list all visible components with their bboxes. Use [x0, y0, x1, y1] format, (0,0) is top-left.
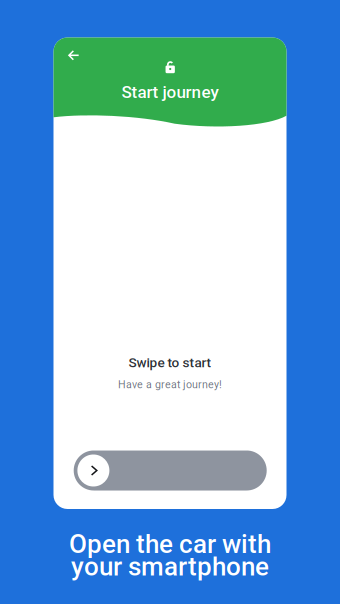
button[interactable]: Swipe to start [74, 450, 267, 490]
staticText: Open the car with [69, 529, 271, 559]
staticText: Swipe to start [128, 355, 211, 370]
button[interactable]: Back [59, 40, 89, 70]
staticText: your smartphone [71, 551, 269, 582]
staticText: Start journey [121, 82, 218, 102]
staticText: Have a great journey! [118, 378, 222, 391]
